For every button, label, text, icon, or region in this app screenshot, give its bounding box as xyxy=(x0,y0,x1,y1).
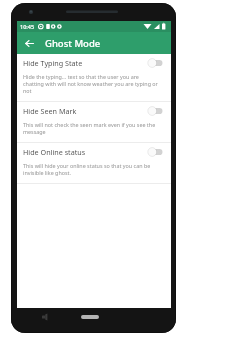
staticText: Hide the typing... text so that the user… xyxy=(23,73,159,94)
button[interactable]: Hide Typing State xyxy=(17,54,171,71)
staticText: This will hide your online status so tha… xyxy=(23,162,159,176)
staticText: Hide Typing State xyxy=(23,58,147,68)
staticText: 10:45 xyxy=(20,23,35,30)
staticText: This will not check the seen mark even i… xyxy=(23,121,159,135)
button[interactable]: Toggle xyxy=(147,105,165,117)
button[interactable]: Back xyxy=(21,35,37,51)
button[interactable]: Toggle xyxy=(147,146,165,158)
button[interactable]: Toggle xyxy=(147,57,165,69)
staticText: Ghost Mode xyxy=(45,37,101,50)
staticText: Hide Seen Mark xyxy=(23,106,147,116)
staticText: Hide Online status xyxy=(23,147,147,157)
button[interactable]: Hide Online status xyxy=(17,143,171,160)
button[interactable]: Hide Seen Mark xyxy=(17,102,171,119)
